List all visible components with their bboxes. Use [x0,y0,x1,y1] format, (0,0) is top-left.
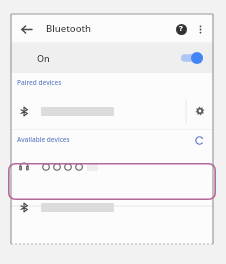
button[interactable]: More options [191,20,209,38]
button[interactable]: Back [16,19,36,39]
button[interactable]: Help [171,19,191,39]
button[interactable]: Device settings [192,103,208,119]
staticText: On [37,52,50,64]
button[interactable]: On [11,43,213,73]
button[interactable] [11,149,213,184]
staticText: Available devices [17,135,70,144]
button[interactable]: Refresh [192,133,206,147]
staticText: ? [179,24,183,34]
staticText: Bluetooth [46,22,92,35]
other: Highlighted available device [8,163,216,200]
button[interactable]: Device settings [11,92,213,130]
staticText: Paired devices [17,78,62,87]
button[interactable] [11,184,213,228]
